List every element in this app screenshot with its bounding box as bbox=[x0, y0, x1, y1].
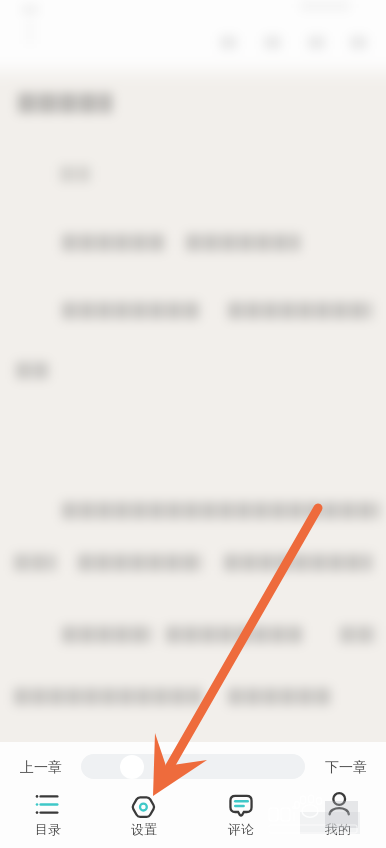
staticText: 目录 bbox=[35, 821, 61, 837]
staticText: 下一章 bbox=[325, 759, 367, 777]
button[interactable]: Table of contents bbox=[0, 790, 96, 848]
staticText: 上一章 bbox=[20, 759, 62, 777]
staticText: 评论 bbox=[228, 821, 254, 837]
button[interactable]: Profile bbox=[289, 790, 386, 848]
button[interactable]: 上一章 bbox=[0, 742, 81, 790]
staticText: 我的 bbox=[325, 821, 351, 837]
button[interactable] bbox=[81, 754, 305, 779]
staticText: 设置 bbox=[131, 821, 157, 837]
button[interactable]: Comments bbox=[192, 790, 289, 848]
button[interactable]: 下一章 bbox=[305, 742, 386, 790]
button[interactable]: Settings bbox=[96, 790, 192, 848]
